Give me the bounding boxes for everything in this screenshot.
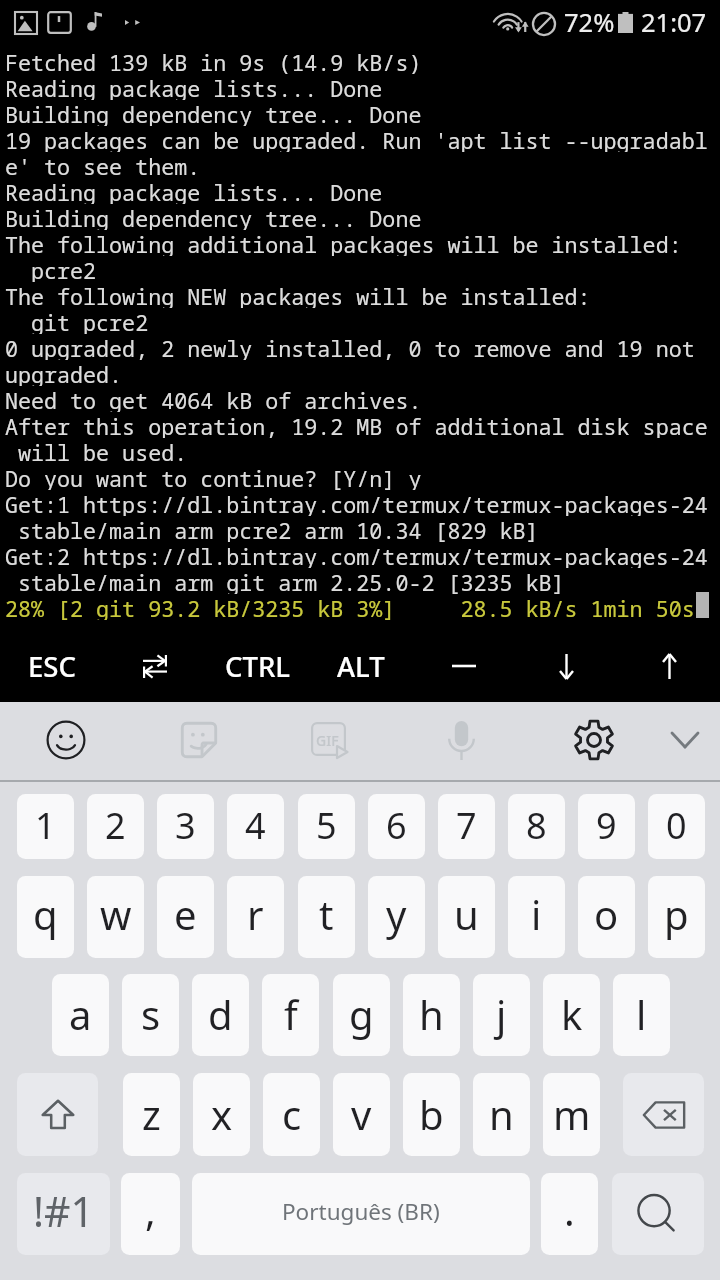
staticText: v <box>351 1087 372 1141</box>
button[interactable]: 6 <box>368 794 425 859</box>
staticText: GIF <box>316 731 339 750</box>
button[interactable]: f <box>262 974 319 1056</box>
button[interactable]: b <box>403 1073 460 1156</box>
staticText: Need to get 4064 kB of archives. <box>5 386 422 412</box>
button[interactable]: CTRL <box>206 630 309 702</box>
button[interactable]: e <box>157 876 214 958</box>
button[interactable]: s <box>122 974 179 1056</box>
button[interactable]: u <box>438 876 495 958</box>
staticText: d <box>208 987 233 1041</box>
staticText: g <box>349 987 374 1041</box>
button[interactable]: l <box>613 974 670 1056</box>
button[interactable]: m <box>543 1073 600 1156</box>
button[interactable]: Arrow down <box>515 630 618 702</box>
button[interactable]: t <box>298 876 355 958</box>
button[interactable]: 0 <box>648 794 705 859</box>
staticText: 5 <box>316 801 337 850</box>
button[interactable]: v <box>333 1073 390 1156</box>
staticText: Building dependency tree... Done <box>5 204 422 230</box>
button[interactable]: n <box>473 1073 530 1156</box>
staticText: git pcre2 <box>5 308 149 334</box>
button[interactable]: i <box>508 876 565 958</box>
staticText: 21:07 <box>641 5 707 40</box>
button[interactable]: Minus <box>412 630 515 702</box>
staticText: l <box>636 987 647 1041</box>
staticText: h <box>419 987 444 1041</box>
button[interactable]: Arrow up <box>618 630 720 702</box>
button[interactable]: ESC <box>0 630 103 702</box>
button[interactable]: g <box>333 974 390 1056</box>
button[interactable]: w <box>87 876 144 958</box>
button[interactable]: 2 <box>87 794 144 859</box>
staticText: x <box>211 1087 233 1141</box>
button[interactable]: Hide keyboard <box>645 700 720 780</box>
staticText: ALT <box>337 648 385 685</box>
button[interactable]: !#1 <box>17 1173 110 1255</box>
button[interactable]: k <box>543 974 600 1056</box>
staticText: After this operation, 19.2 MB of additio… <box>5 412 708 438</box>
staticText: m <box>553 1087 591 1141</box>
button[interactable]: x <box>193 1073 250 1156</box>
button[interactable]: 5 <box>298 794 355 859</box>
button[interactable]: q <box>17 876 74 958</box>
button[interactable]: 8 <box>508 794 565 859</box>
staticText: stable/main arm pcre2 arm 10.34 [829 kB] <box>5 516 539 542</box>
button[interactable]: a <box>52 974 109 1056</box>
button[interactable]: GIF <box>289 700 369 780</box>
staticText: r <box>247 887 264 941</box>
button[interactable]: Emoji <box>26 700 106 780</box>
button[interactable]: z <box>123 1073 180 1156</box>
staticText: q <box>33 887 58 941</box>
button[interactable]: r <box>227 876 284 958</box>
button[interactable]: Backspace <box>623 1073 704 1156</box>
button[interactable]: Search <box>612 1173 704 1255</box>
staticText: Português (BR) <box>282 1196 440 1227</box>
staticText: e <box>174 887 197 941</box>
button[interactable]: Settings <box>554 700 634 780</box>
button[interactable]: j <box>473 974 530 1056</box>
staticText: stable/main arm git arm 2.25.0-2 [3235 k… <box>5 568 565 594</box>
button[interactable]: . <box>541 1173 598 1255</box>
button[interactable]: , <box>121 1173 180 1255</box>
staticText: 3 <box>175 801 196 850</box>
button[interactable]: Voice input <box>421 700 501 780</box>
staticText: f <box>284 987 298 1041</box>
button[interactable]: h <box>403 974 460 1056</box>
staticText: 9 <box>596 801 617 850</box>
staticText: Do you want to continue? [Y/n] y <box>5 464 422 490</box>
button[interactable]: y <box>368 876 425 958</box>
staticText: 72% <box>564 5 615 40</box>
button[interactable]: c <box>263 1073 320 1156</box>
button[interactable]: Stickers <box>159 700 239 780</box>
staticText: 19 packages can be upgraded. Run 'apt li… <box>5 126 708 152</box>
staticText: a <box>69 987 92 1041</box>
staticText: u <box>454 887 479 941</box>
staticText: Fetched 139 kB in 9s (14.9 kB/s) <box>5 48 422 74</box>
staticText: will be used. <box>5 438 188 464</box>
button[interactable]: 3 <box>157 794 214 859</box>
staticText: z <box>142 1087 161 1141</box>
staticText: 28% [2 git 93.2 kB/3235 kB 3%] 28.5 kB/s… <box>5 594 695 620</box>
staticText: y <box>386 887 407 941</box>
staticText: !#1 <box>33 1183 94 1239</box>
staticText: Get:2 https://dl.bintray.com/termux/term… <box>5 542 708 568</box>
staticText: Building dependency tree... Done <box>5 100 422 126</box>
button[interactable]: 4 <box>227 794 284 859</box>
staticText: 1 <box>35 801 56 850</box>
button[interactable]: 7 <box>438 794 495 859</box>
staticText: 8 <box>526 801 547 850</box>
button[interactable]: p <box>648 876 705 958</box>
button[interactable]: d <box>192 974 249 1056</box>
staticText: 0 <box>666 801 687 850</box>
button[interactable]: Tab <box>103 630 206 702</box>
staticText: upgraded. <box>5 360 123 386</box>
button[interactable]: Português (BR) <box>192 1173 530 1255</box>
button[interactable]: 9 <box>578 794 635 859</box>
button[interactable]: Shift <box>17 1073 98 1156</box>
button[interactable]: 1 <box>17 794 74 859</box>
button[interactable]: o <box>578 876 635 958</box>
staticText: Reading package lists... Done <box>5 178 383 204</box>
staticText: Get:1 https://dl.bintray.com/termux/term… <box>5 490 708 516</box>
button[interactable]: ALT <box>309 630 412 702</box>
staticText: pcre2 <box>5 256 97 282</box>
